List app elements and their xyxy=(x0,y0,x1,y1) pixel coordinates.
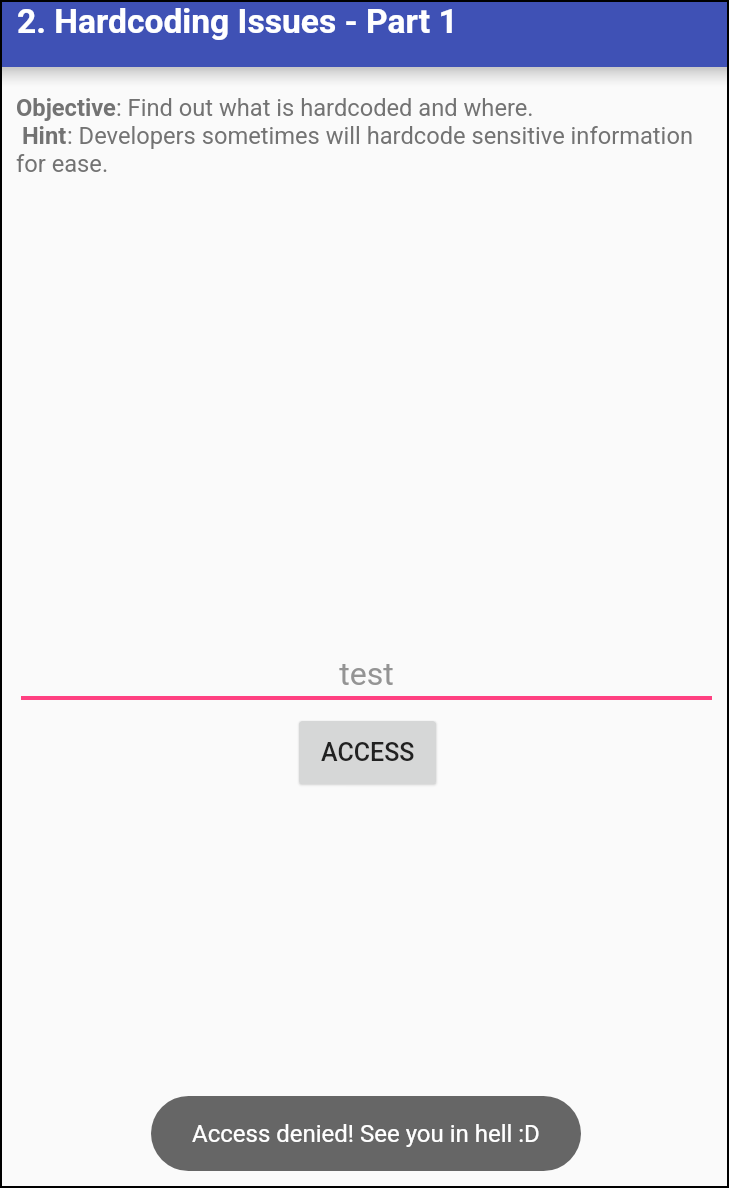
staticText: Objective xyxy=(16,94,116,122)
staticText: Access denied! See you in hell :D xyxy=(192,1120,540,1148)
button[interactable]: Password field xyxy=(21,636,712,700)
staticText: 2. Hardcoding Issues - Part 1 xyxy=(17,2,458,41)
staticText: : Find out what is hardcoded and where. xyxy=(116,94,534,122)
button[interactable]: ACCESS xyxy=(299,721,436,784)
staticText: ACCESS xyxy=(321,738,415,767)
staticText: for ease. xyxy=(16,150,109,178)
staticText: test xyxy=(21,655,712,693)
staticText: Hint xyxy=(16,122,67,150)
staticText: : Developers sometimes will hardcode sen… xyxy=(67,122,693,150)
